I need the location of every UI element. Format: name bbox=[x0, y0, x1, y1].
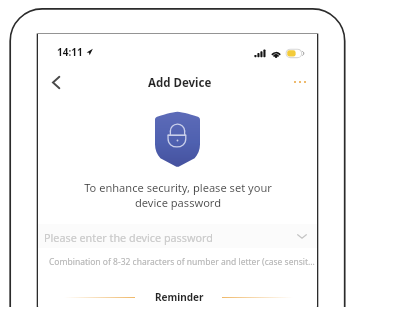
button[interactable]: Back bbox=[42, 68, 70, 96]
staticText: 14:11 bbox=[57, 45, 83, 59]
button[interactable]: More options bbox=[286, 68, 314, 96]
button[interactable]: Show password bbox=[295, 229, 309, 243]
staticText: Please enter the device password bbox=[44, 230, 213, 245]
staticText: Reminder bbox=[155, 290, 204, 304]
staticText: Combination of 8-32 characters of number… bbox=[49, 256, 315, 268]
staticText: To enhance security, please set your dev… bbox=[84, 180, 272, 210]
button[interactable]: Please enter the device password bbox=[38, 224, 317, 248]
staticText: Add Device bbox=[148, 75, 212, 91]
